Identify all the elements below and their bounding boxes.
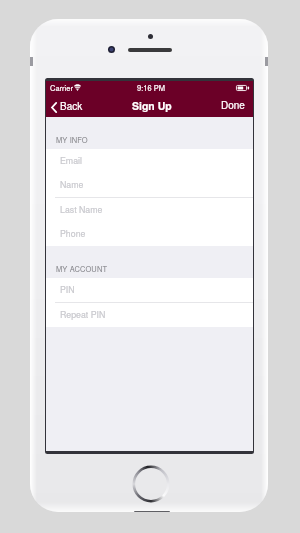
button[interactable]: Done xyxy=(214,97,253,117)
staticText: 9:16 PM xyxy=(137,82,165,93)
button[interactable]: Home xyxy=(132,465,170,503)
staticText: Repeat PIN xyxy=(60,308,106,321)
staticText: Name xyxy=(60,178,84,191)
button[interactable]: Repeat PIN xyxy=(46,303,253,327)
staticText: Done xyxy=(221,98,245,112)
button[interactable]: PIN xyxy=(46,278,253,302)
staticText: MY ACCOUNT xyxy=(56,263,108,274)
other: Wi-Fi xyxy=(74,84,81,91)
staticText: Back xyxy=(60,99,83,113)
staticText: Email xyxy=(60,154,82,167)
button[interactable]: Email xyxy=(46,149,253,173)
button[interactable]: Phone xyxy=(46,222,253,246)
staticText: Last Name xyxy=(60,203,103,216)
staticText: MY INFO xyxy=(56,134,88,145)
staticText: PIN xyxy=(60,283,75,296)
staticText: Carrier xyxy=(50,82,73,93)
other: Battery xyxy=(236,85,250,91)
staticText: Sign Up xyxy=(132,98,172,113)
button[interactable]: Name xyxy=(46,173,253,197)
staticText: Phone xyxy=(60,227,86,240)
button[interactable]: Last Name xyxy=(46,198,253,222)
button[interactable]: Back xyxy=(46,97,89,117)
